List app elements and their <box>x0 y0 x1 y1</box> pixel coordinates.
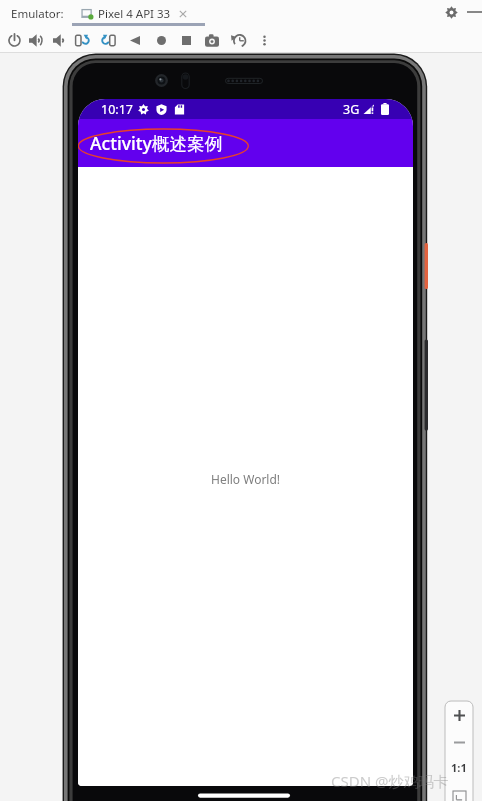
button[interactable]: Home <box>150 27 172 53</box>
staticText: CSDN @炒鸡玛卡 <box>331 771 449 791</box>
staticText: Activity概述案例 <box>90 131 223 155</box>
button[interactable]: More <box>253 27 275 53</box>
staticText: 1:1 <box>451 760 467 775</box>
button[interactable]: Minimize <box>464 2 482 22</box>
button[interactable]: Volume up <box>25 27 47 53</box>
button[interactable]: Zoom out <box>445 730 473 755</box>
staticText: 3G <box>343 101 360 118</box>
staticText: Hello World! <box>211 471 281 487</box>
staticText: Emulator: <box>11 6 64 22</box>
button[interactable]: Settings <box>441 2 461 22</box>
button[interactable]: Zoom in <box>445 701 473 730</box>
button[interactable]: Power <box>3 27 25 53</box>
button[interactable]: Recents <box>175 27 197 53</box>
button[interactable]: Record <box>227 27 249 53</box>
button[interactable]: Fit to screen <box>445 780 473 801</box>
staticText: Pixel 4 API 33 <box>98 6 171 22</box>
button[interactable]: Actual size <box>445 755 473 780</box>
staticText: 10:17 <box>101 101 133 118</box>
button[interactable]: Volume down <box>47 27 69 53</box>
button[interactable]: Rotate right <box>97 27 119 53</box>
button[interactable]: Back <box>124 27 146 53</box>
button[interactable]: Rotate left <box>71 27 93 53</box>
button[interactable]: Screenshot <box>201 27 223 53</box>
